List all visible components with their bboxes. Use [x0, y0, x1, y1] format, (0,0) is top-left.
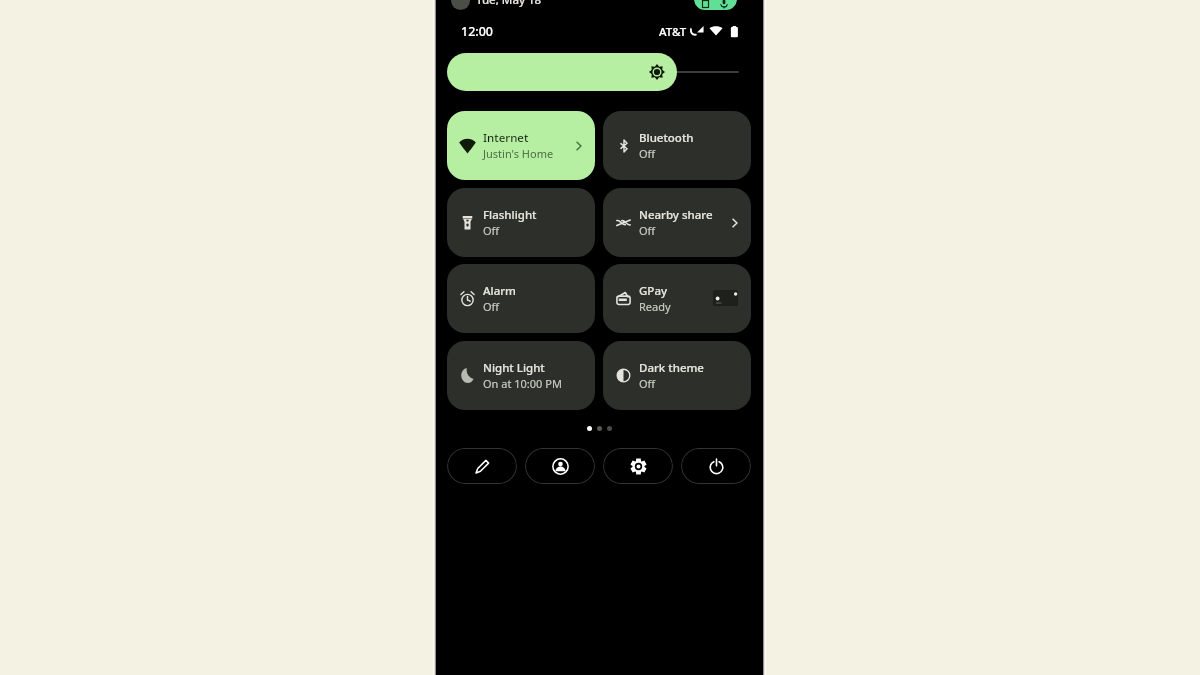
button[interactable]: Tue, May 18: [447, 0, 647, 12]
button[interactable]: Dark theme: [603, 341, 751, 410]
staticText: Internet: [483, 130, 529, 146]
button[interactable]: GPay: [603, 264, 751, 333]
staticText: Off: [483, 223, 500, 238]
button[interactable]: Page 2: [597, 426, 602, 431]
button[interactable]: Night Light: [447, 341, 595, 410]
staticText: Off: [639, 376, 656, 391]
staticText: Off: [483, 299, 500, 314]
button[interactable]: Power: [681, 448, 751, 484]
staticText: Alarm: [483, 283, 516, 299]
button[interactable]: Internet: [447, 111, 595, 180]
staticText: 12:00: [461, 23, 494, 40]
button[interactable]: Brightness: [447, 53, 677, 91]
staticText: AT&T: [659, 24, 687, 38]
staticText: Off: [639, 146, 656, 161]
staticText: Off: [639, 223, 656, 238]
staticText: Ready: [639, 299, 671, 314]
staticText: Nearby share: [639, 207, 713, 223]
staticText: Flashlight: [483, 207, 537, 223]
staticText: Justin's Home: [483, 146, 554, 161]
button[interactable]: Alarm: [447, 264, 595, 333]
button[interactable]: Settings: [603, 448, 673, 484]
button[interactable]: Edit: [447, 448, 517, 484]
button[interactable]: Bluetooth: [603, 111, 751, 180]
staticText: Night Light: [483, 360, 545, 376]
staticText: Tue, May 18: [476, 0, 542, 8]
button[interactable]: Page 1: [587, 426, 592, 431]
staticText: On at 10:00 PM: [483, 376, 562, 391]
button[interactable]: Page 3: [607, 426, 612, 431]
staticText: Dark theme: [639, 360, 704, 376]
button[interactable]: Nearby share: [603, 188, 751, 257]
button[interactable]: Flashlight: [447, 188, 595, 257]
staticText: GPay: [639, 283, 668, 299]
button[interactable]: Account: [525, 448, 595, 484]
staticText: Bluetooth: [639, 130, 694, 146]
button[interactable]: Quick actions: [694, 0, 737, 10]
